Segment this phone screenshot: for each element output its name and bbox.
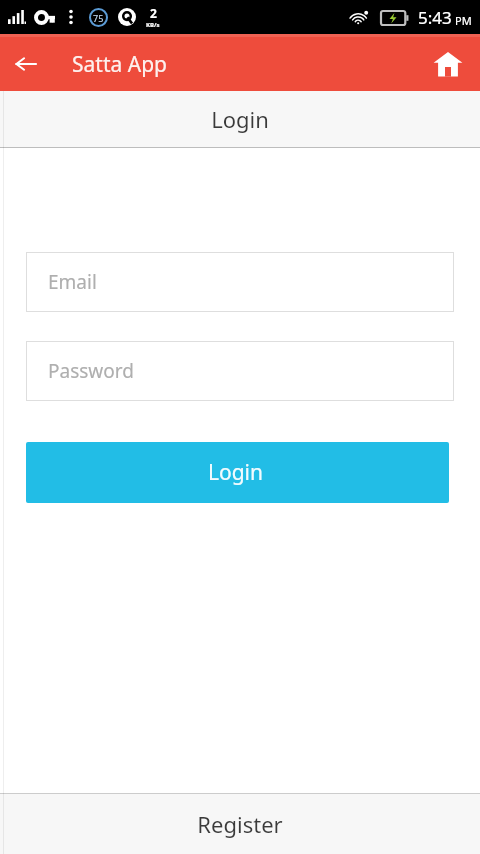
button[interactable]: Home [426,42,470,86]
staticText: Login [208,458,264,487]
staticText: 2 [150,5,157,21]
staticText: Register [197,809,283,839]
staticText: PM [455,13,472,28]
button[interactable]: Password [26,341,454,401]
staticText: 5:43 [418,6,452,29]
staticText: 75 [93,12,104,24]
button[interactable]: Back [4,42,48,86]
staticText: Satta App [72,50,167,79]
staticText: KB/s [146,21,160,29]
button[interactable]: Register [0,794,480,854]
staticText: Password [48,358,134,384]
button[interactable]: Login [26,442,449,503]
staticText: Login [211,104,269,134]
staticText: Email [48,269,97,295]
button[interactable]: Email [26,252,454,312]
